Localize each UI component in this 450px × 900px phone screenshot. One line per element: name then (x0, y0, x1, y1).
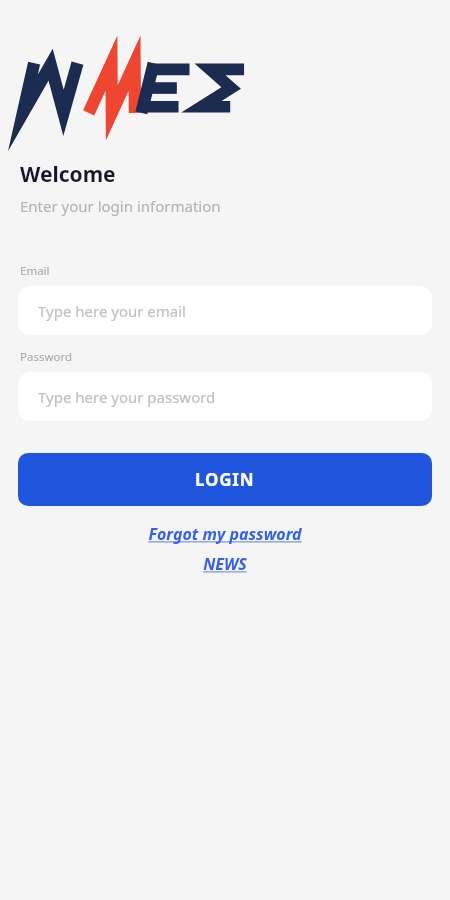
staticText: LOGIN (195, 468, 255, 491)
button[interactable]: LOGIN (18, 453, 432, 506)
staticText: Forgot my password (148, 523, 302, 545)
button[interactable]: Type here your password (18, 372, 432, 421)
button[interactable]: NEWS (0, 553, 450, 575)
staticText: NEWS (203, 553, 247, 575)
staticText: Type here your email (38, 301, 186, 321)
staticText: Email (20, 263, 50, 279)
staticText: Enter your login information (20, 196, 221, 216)
staticText: Type here your password (38, 387, 216, 407)
button[interactable]: Forgot my password (0, 523, 450, 545)
staticText: Welcome (20, 160, 116, 189)
button[interactable]: Type here your email (18, 286, 432, 335)
staticText: Password (20, 349, 73, 365)
